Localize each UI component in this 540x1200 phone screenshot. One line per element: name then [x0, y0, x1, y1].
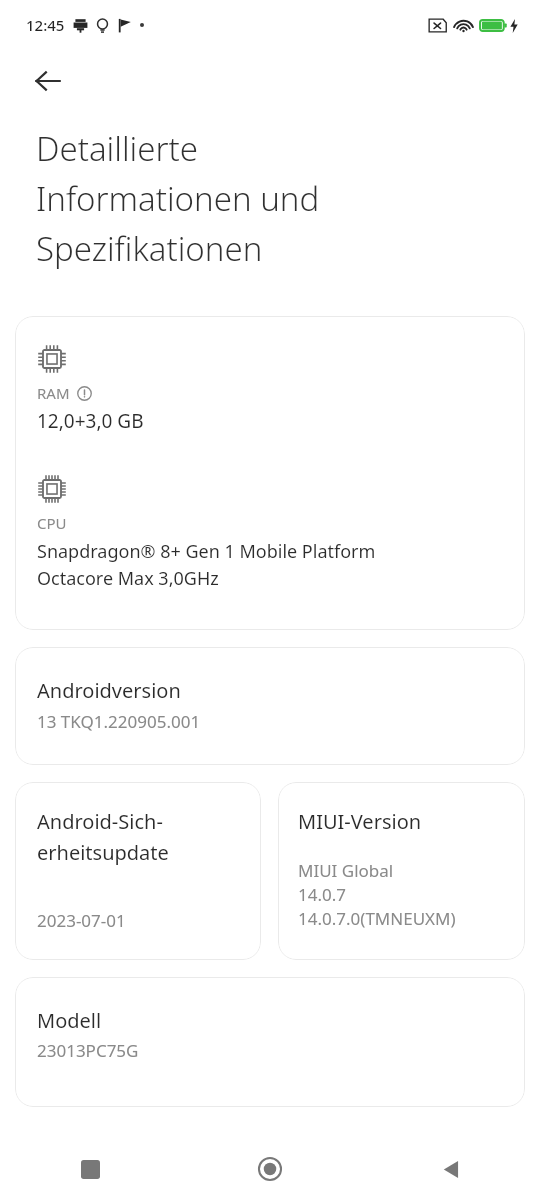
- staticText: Android-Sich- erheitsupdate: [37, 808, 169, 865]
- button[interactable]: Android-Sich- erheitsupdate: [15, 782, 261, 960]
- staticText: RAM: [37, 383, 70, 403]
- button[interactable]: Back: [360, 1138, 540, 1200]
- staticText: 12:45: [26, 15, 65, 35]
- staticText: MIUI-Version: [298, 808, 422, 835]
- staticText: 23013PC75G: [37, 1039, 139, 1062]
- button[interactable]: Modell: [15, 977, 525, 1107]
- staticText: 2023-07-01: [37, 909, 126, 932]
- staticText: Detaillierte Informationen und Spezifika…: [36, 126, 320, 271]
- staticText: Modell: [37, 1007, 102, 1034]
- button[interactable]: Androidversion: [15, 647, 525, 765]
- button[interactable]: Home: [180, 1138, 360, 1200]
- staticText: 13 TKQ1.220905.001: [37, 710, 201, 733]
- staticText: CPU: [37, 513, 67, 533]
- staticText: 12,0+3,0 GB: [37, 408, 144, 434]
- button[interactable]: Recent apps: [0, 1138, 180, 1200]
- button[interactable]: MIUI-Version: [278, 782, 525, 960]
- staticText: MIUI Global 14.0.7 14.0.7.0(TMNEUXM): [298, 859, 456, 930]
- staticText: Snapdragon® 8+ Gen 1 Mobile Platform Oct…: [37, 539, 376, 590]
- staticText: Androidversion: [37, 677, 181, 704]
- button[interactable]: Back: [24, 57, 72, 105]
- button[interactable]: RAM: [15, 316, 525, 630]
